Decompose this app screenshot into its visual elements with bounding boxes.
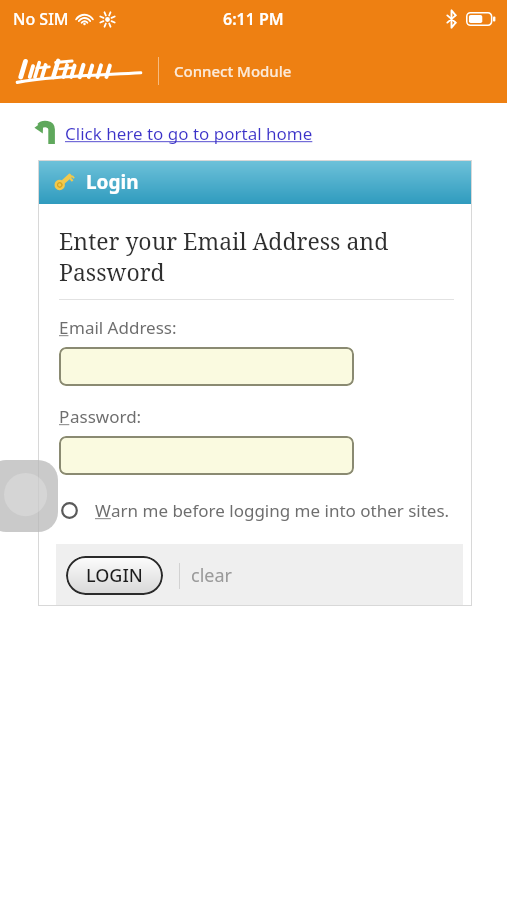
button[interactable]: clear	[191, 563, 232, 588]
staticText: Click here to go to portal home	[65, 122, 313, 145]
staticText: arn me before logging me into other site…	[111, 499, 450, 522]
staticText: No SIM	[13, 8, 69, 30]
staticText: Enter your Email Address and Password	[59, 225, 454, 288]
staticText: E	[59, 316, 69, 339]
staticText: Connect Module	[174, 61, 292, 81]
button[interactable]: W	[59, 499, 454, 522]
button[interactable]: LOGIN	[66, 556, 163, 595]
button[interactable]: Click here to go to portal home	[34, 120, 313, 146]
button[interactable]	[59, 347, 354, 386]
staticText: LOGIN	[86, 563, 143, 588]
button[interactable]: AssistiveTouch	[0, 460, 58, 532]
button[interactable]: Login	[38, 160, 472, 204]
staticText: clear	[191, 563, 232, 588]
staticText: 6:11 PM	[223, 8, 284, 30]
staticText: P	[59, 405, 70, 428]
staticText: W	[95, 499, 111, 522]
staticText: assword:	[70, 405, 142, 428]
staticText: Login	[86, 169, 139, 195]
staticText: mail Address:	[69, 316, 177, 339]
button[interactable]	[59, 436, 354, 475]
